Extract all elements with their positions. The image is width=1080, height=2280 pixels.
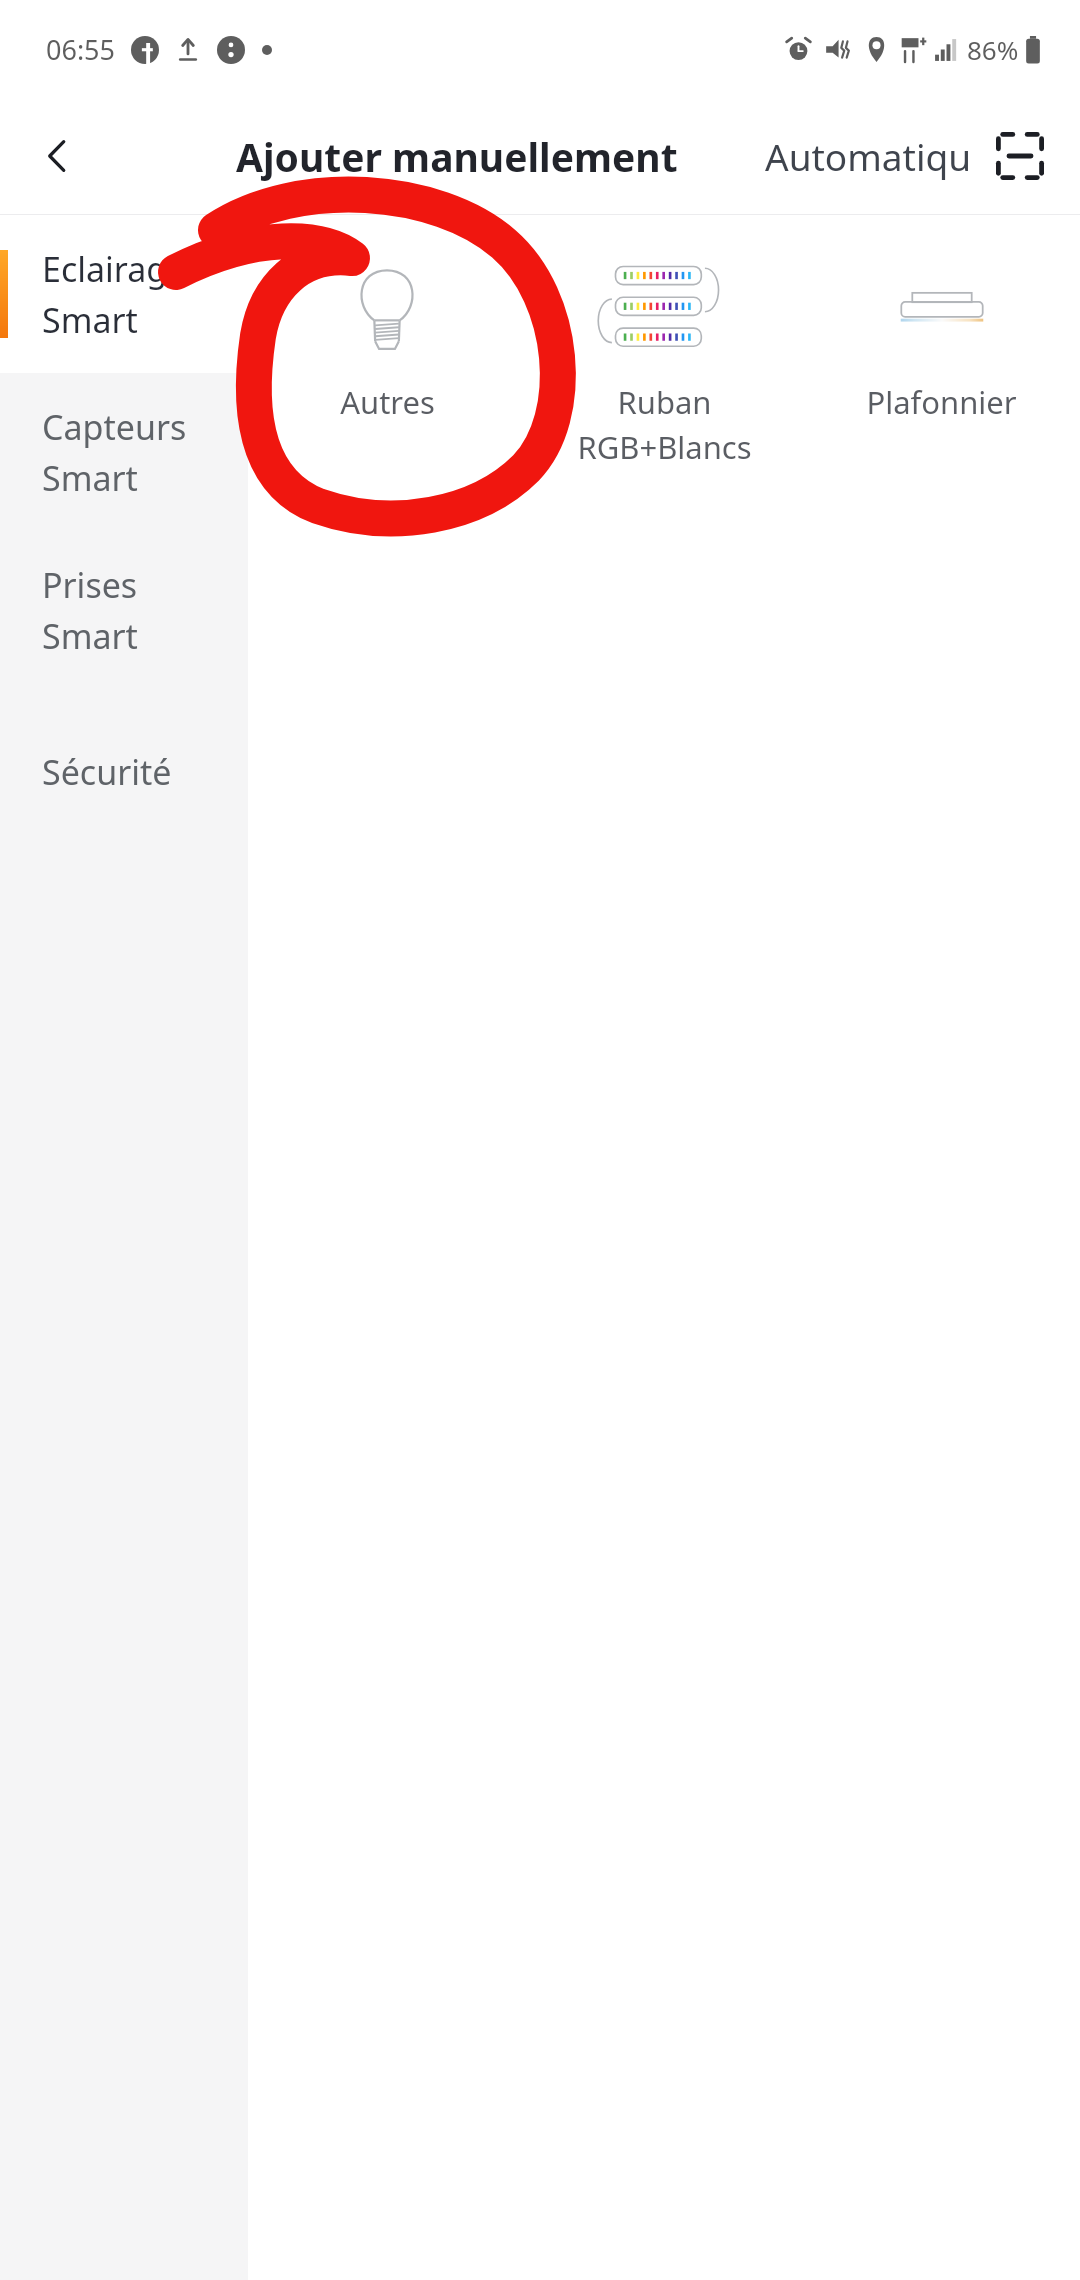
staticText: Eclairage [42, 246, 187, 292]
button[interactable]: Plafonnier [803, 245, 1080, 427]
staticText: 86% [967, 32, 1019, 67]
staticText: Smart [42, 455, 138, 501]
button[interactable]: Sécurité [0, 689, 248, 855]
button[interactable]: Ruban [526, 245, 803, 472]
staticText: Automatiqu [765, 131, 972, 181]
staticText: 06:55 [46, 31, 116, 68]
button[interactable]: Back [16, 114, 100, 198]
button[interactable]: Automatiqu [765, 131, 972, 181]
staticText: Prises [42, 562, 138, 608]
staticText: Capteurs [42, 404, 187, 450]
staticText: Smart [42, 613, 138, 659]
staticText: Sécurité [42, 749, 172, 795]
staticText: Ruban [617, 381, 712, 423]
staticText: Autres [340, 381, 435, 423]
button[interactable]: Capteurs [0, 373, 248, 531]
staticText: Plafonnier [866, 381, 1017, 423]
button[interactable]: Eclairage [0, 215, 248, 373]
button[interactable]: Scan QR code [982, 118, 1058, 194]
button[interactable]: Prises [0, 531, 248, 689]
staticText: RGB+Blancs [577, 426, 752, 468]
button[interactable]: Autres [248, 245, 526, 427]
staticText: Ajouter manuellement [236, 130, 678, 183]
staticText: Smart [42, 297, 138, 343]
